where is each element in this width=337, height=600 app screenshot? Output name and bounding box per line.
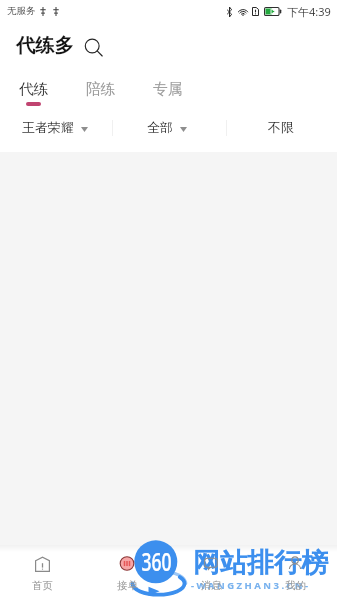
- staticText: 专属: [153, 80, 183, 99]
- button[interactable]: 消息: [169, 545, 253, 600]
- button[interactable]: 陪练: [67, 70, 134, 107]
- button[interactable]: 接单: [85, 545, 169, 600]
- button[interactable]: 我的: [253, 545, 337, 600]
- staticText: 代练多: [16, 34, 74, 58]
- staticText: 代练: [19, 80, 49, 99]
- staticText: 接单: [117, 579, 138, 592]
- staticText: 不限: [268, 120, 294, 136]
- button[interactable]: Search: [83, 35, 106, 58]
- button[interactable]: 专属: [134, 70, 201, 107]
- staticText: 消息: [201, 579, 222, 592]
- button[interactable]: 不限: [225, 107, 337, 152]
- staticText: 无服务: [7, 5, 36, 17]
- staticText: 360: [141, 544, 171, 572]
- staticText: 下午4:39: [287, 4, 331, 19]
- staticText: 网站排行榜: [193, 546, 328, 580]
- staticText: 首页: [32, 579, 53, 592]
- button[interactable]: 代练: [0, 70, 67, 107]
- staticText: -WANGZHAN3.CN-: [191, 579, 311, 592]
- staticText: 陪练: [86, 80, 116, 99]
- button[interactable]: 全部: [113, 107, 225, 152]
- staticText: 全部: [147, 120, 173, 136]
- staticText: 王者荣耀: [22, 120, 74, 136]
- button[interactable]: 王者荣耀: [0, 107, 113, 152]
- button[interactable]: 首页: [0, 545, 85, 600]
- staticText: 我的: [285, 579, 306, 592]
